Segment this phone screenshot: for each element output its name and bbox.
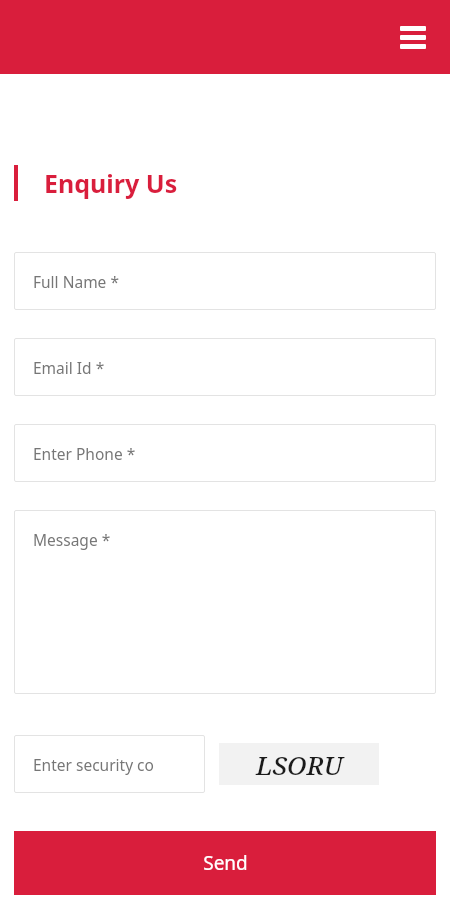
button[interactable]: Send [14,831,436,895]
button[interactable]: Message * [14,510,436,694]
staticText: Email Id * [33,357,105,378]
staticText: Enquiry Us [44,166,178,200]
button[interactable]: Menu [398,22,428,52]
button[interactable]: Full Name * [14,252,436,310]
staticText: Full Name * [33,271,119,292]
staticText: Message * [33,529,111,550]
staticText: Enter security co [33,754,154,775]
button[interactable]: Enter security co [14,735,205,793]
button[interactable]: Email Id * [14,338,436,396]
staticText: LSORU [256,747,343,782]
staticText: Send [203,850,248,876]
button[interactable]: Enter Phone * [14,424,436,482]
staticText: Enter Phone * [33,443,136,464]
